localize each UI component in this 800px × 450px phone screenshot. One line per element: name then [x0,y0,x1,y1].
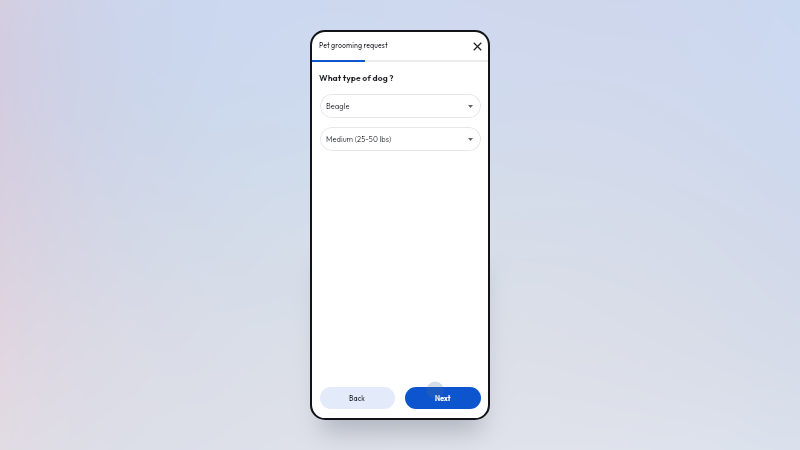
staticText: Medium (25-50 lbs) [326,134,392,144]
staticText: What type of dog ? [319,72,394,83]
button[interactable]: Beagle [320,94,481,118]
button[interactable]: Close [470,39,484,53]
button[interactable]: Next [405,387,481,409]
staticText: Beagle [326,101,350,111]
button[interactable]: Back [320,387,395,409]
staticText: Pet grooming request [319,41,388,50]
button[interactable]: Medium (25-50 lbs) [320,127,481,151]
staticText: Back [349,394,366,403]
staticText: Next [435,394,451,403]
